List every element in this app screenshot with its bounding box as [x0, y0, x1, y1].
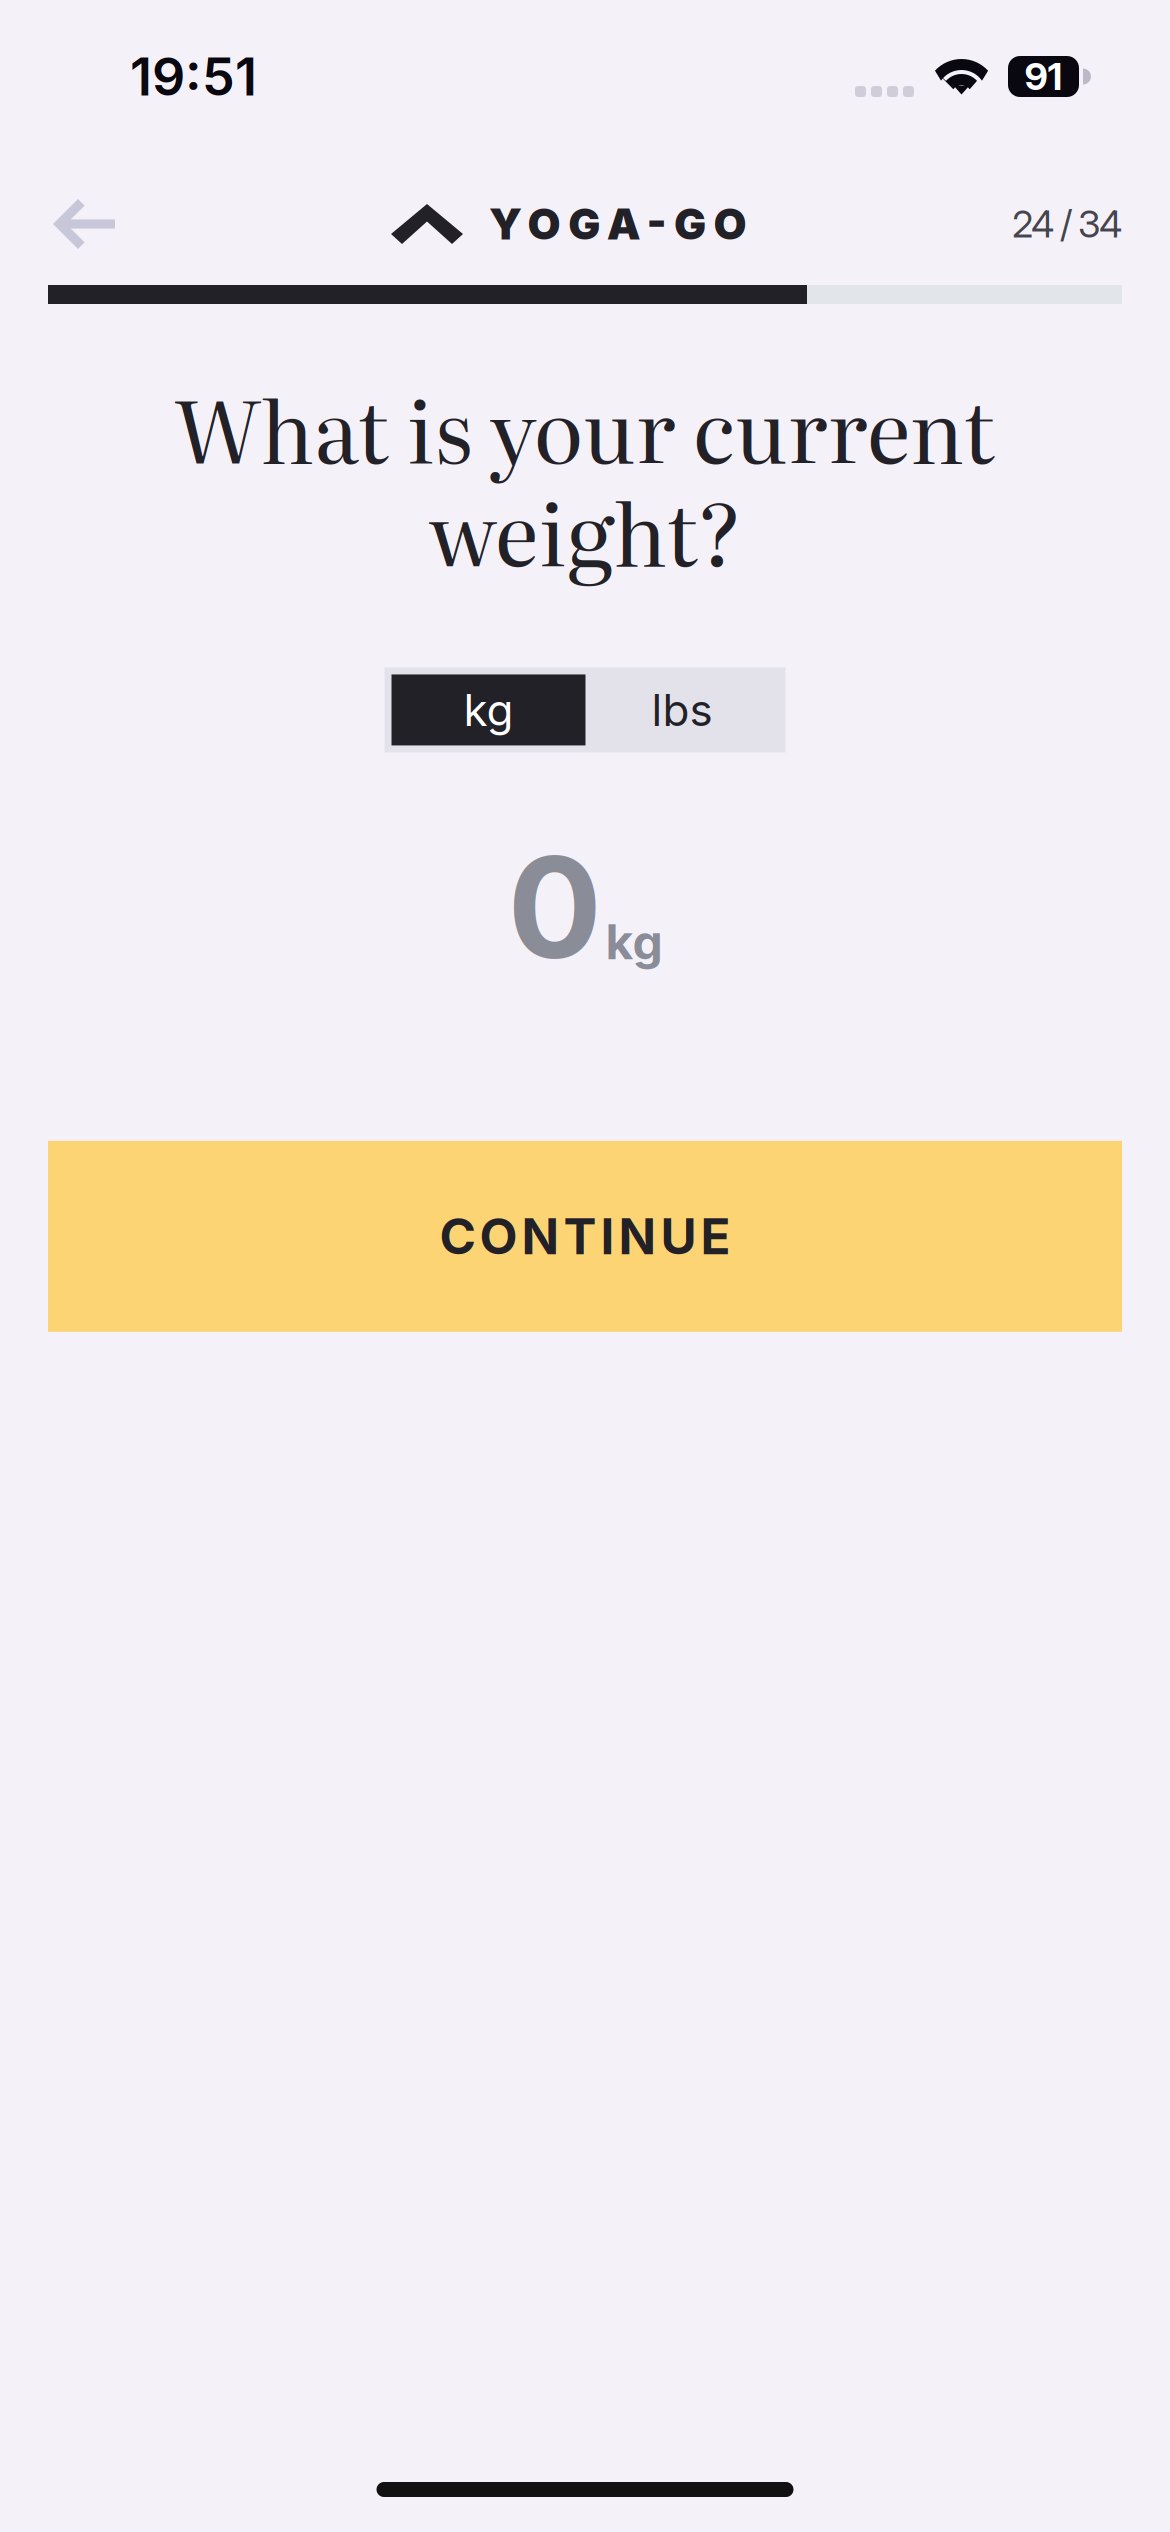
- staticText: 0: [507, 822, 601, 992]
- button[interactable]: lbs: [585, 674, 778, 745]
- staticText: CONTINUE: [439, 1206, 730, 1266]
- staticText: kg: [605, 913, 662, 971]
- staticText: lbs: [651, 683, 712, 736]
- staticText: 91: [1024, 54, 1062, 99]
- staticText: YOGA-GO: [489, 198, 747, 250]
- button[interactable]: CONTINUE: [48, 1141, 1122, 1332]
- staticText: What is your current weight?: [174, 363, 995, 592]
- button[interactable]: Back: [32, 174, 136, 274]
- button[interactable]: 24 / 34: [1012, 174, 1122, 274]
- staticText: kg: [463, 683, 513, 736]
- staticText: 19:51: [130, 45, 257, 108]
- button[interactable]: kg: [391, 674, 585, 745]
- staticText: 24 / 34: [1012, 201, 1122, 247]
